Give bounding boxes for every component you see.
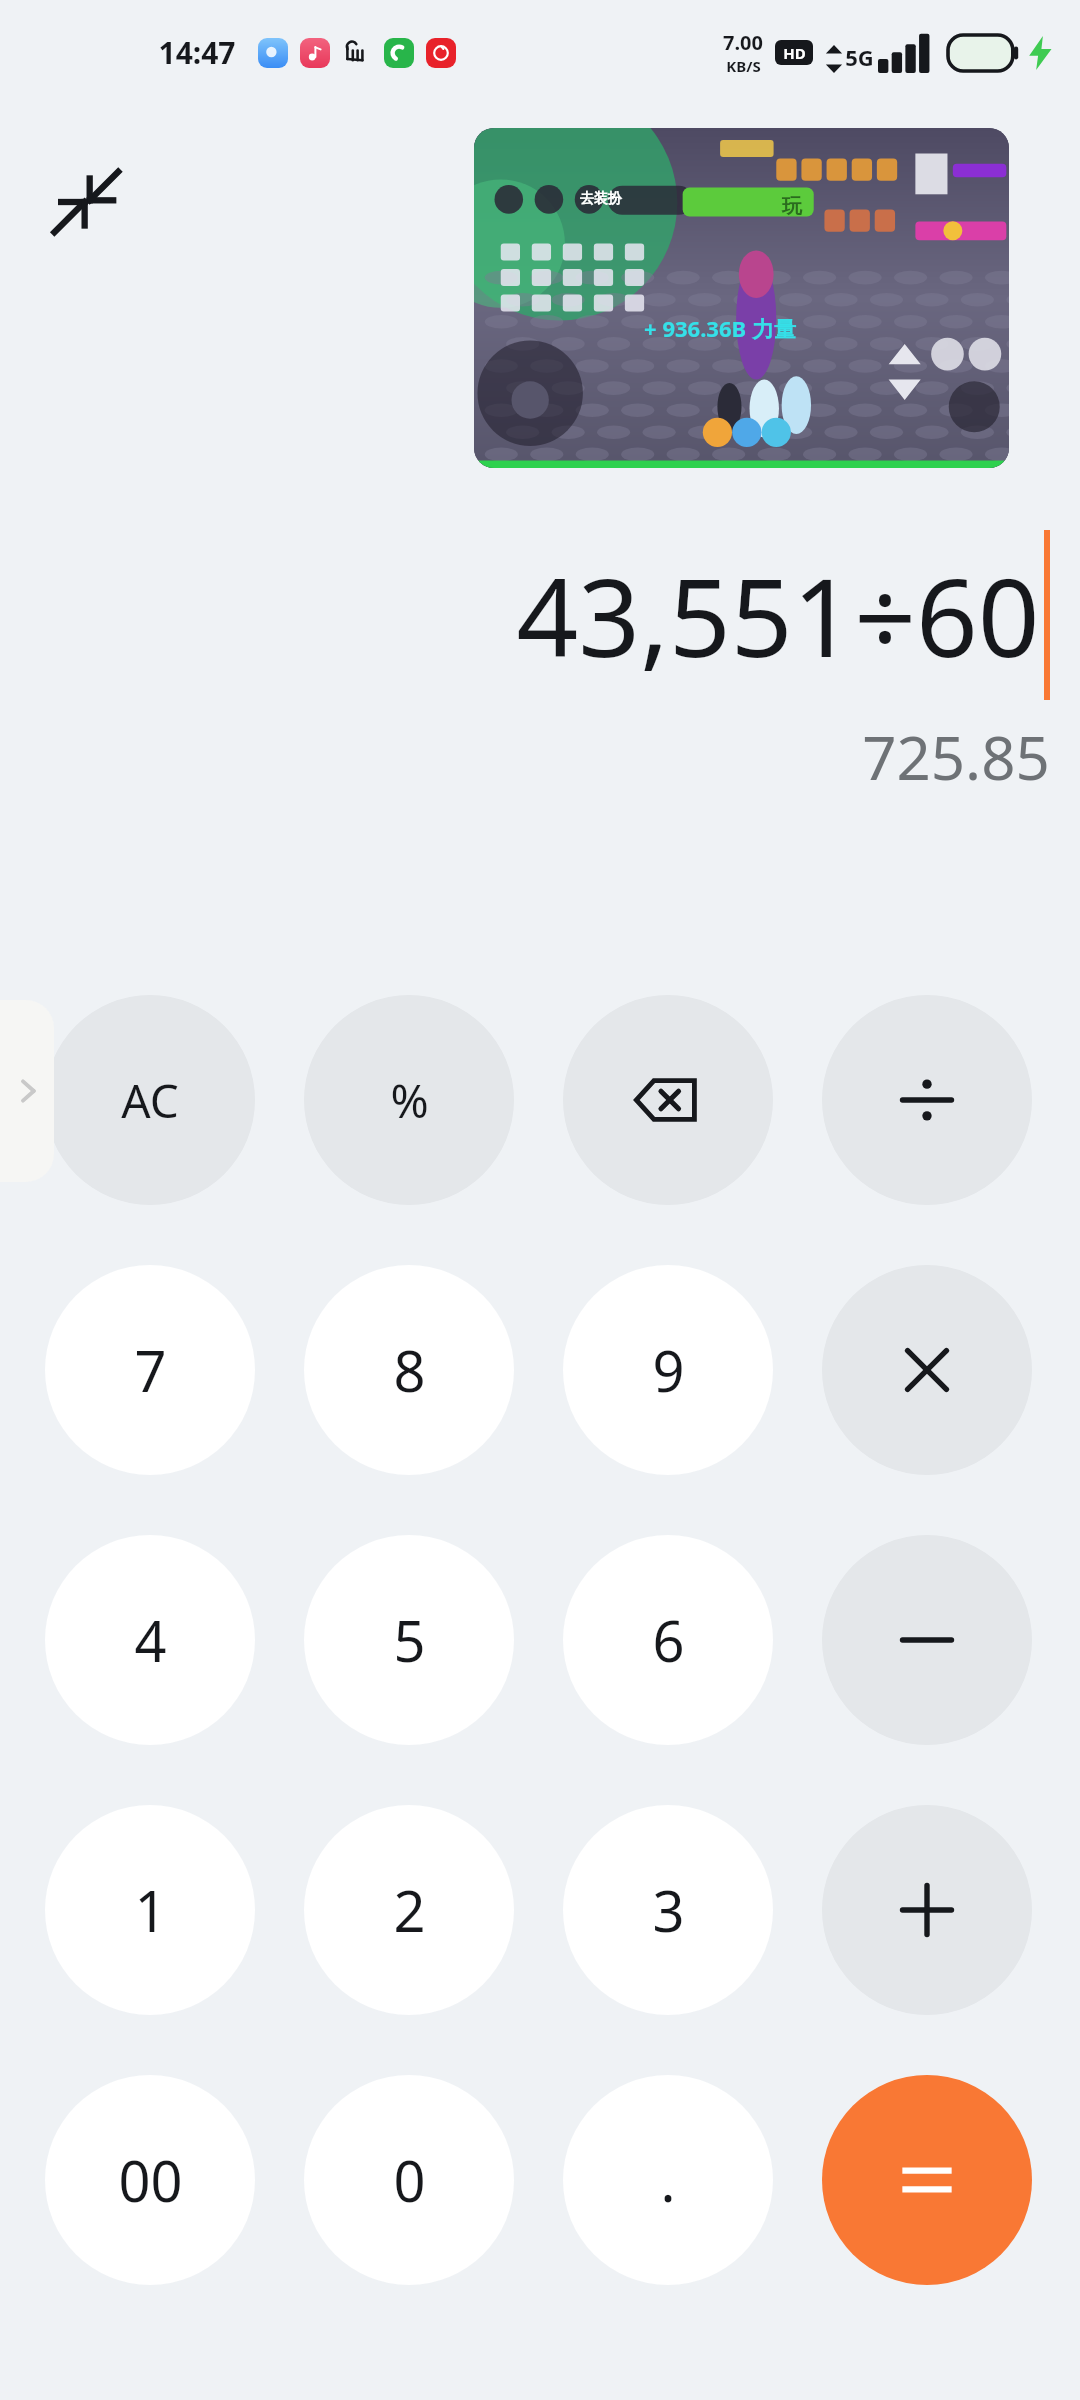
staticText: .: [660, 2142, 676, 2218]
button[interactable]: 3: [563, 1805, 773, 2015]
staticText: 43,551÷60: [516, 542, 1040, 689]
staticText: 5G: [845, 42, 874, 72]
staticText: 00: [118, 2142, 183, 2218]
button[interactable]: Add: [822, 1805, 1032, 2015]
button[interactable]: Subtract: [822, 1535, 1032, 1745]
button[interactable]: 1: [45, 1805, 255, 2015]
button[interactable]: 0: [304, 2075, 514, 2285]
staticText: 3: [652, 1872, 685, 1948]
button[interactable]: 5: [304, 1535, 514, 1745]
staticText: 7.00: [723, 29, 763, 56]
staticText: 7: [134, 1332, 167, 1408]
button[interactable]: 8: [304, 1265, 514, 1475]
staticText: 14:47: [158, 32, 236, 73]
button[interactable]: .: [563, 2075, 773, 2285]
button[interactable]: %: [304, 995, 514, 1205]
staticText: 725.85: [862, 716, 1050, 798]
button[interactable]: Collapse floating window: [46, 160, 130, 244]
button[interactable]: 6: [563, 1535, 773, 1745]
button[interactable]: 2: [304, 1805, 514, 2015]
button[interactable]: Backspace: [563, 995, 773, 1205]
staticText: KB/S: [726, 56, 761, 76]
staticText: 5: [393, 1602, 426, 1678]
staticText: 0: [393, 2142, 426, 2218]
staticText: AC: [121, 1069, 179, 1132]
button[interactable]: Multiply: [822, 1265, 1032, 1475]
button[interactable]: Equals: [822, 2075, 1032, 2285]
staticText: 8: [393, 1332, 426, 1408]
staticText: 玩: [782, 194, 802, 219]
staticText: 1: [134, 1872, 167, 1948]
staticText: 6: [652, 1602, 685, 1678]
staticText: 去装扮: [580, 190, 622, 208]
staticText: 9: [652, 1332, 685, 1408]
button[interactable]: Open panel: [0, 1000, 54, 1182]
staticText: + 936.36B 力量: [644, 313, 796, 343]
button[interactable]: 7: [45, 1265, 255, 1475]
button[interactable]: AC: [45, 995, 255, 1205]
staticText: HD: [783, 43, 806, 63]
staticText: 2: [393, 1872, 426, 1948]
button[interactable]: Divide: [822, 995, 1032, 1205]
button[interactable]: 4: [45, 1535, 255, 1745]
button[interactable]: 9: [563, 1265, 773, 1475]
button[interactable]: 00: [45, 2075, 255, 2285]
staticText: %: [390, 1069, 429, 1132]
staticText: 4: [134, 1602, 167, 1678]
button[interactable]: Floating game window: [474, 128, 1009, 468]
